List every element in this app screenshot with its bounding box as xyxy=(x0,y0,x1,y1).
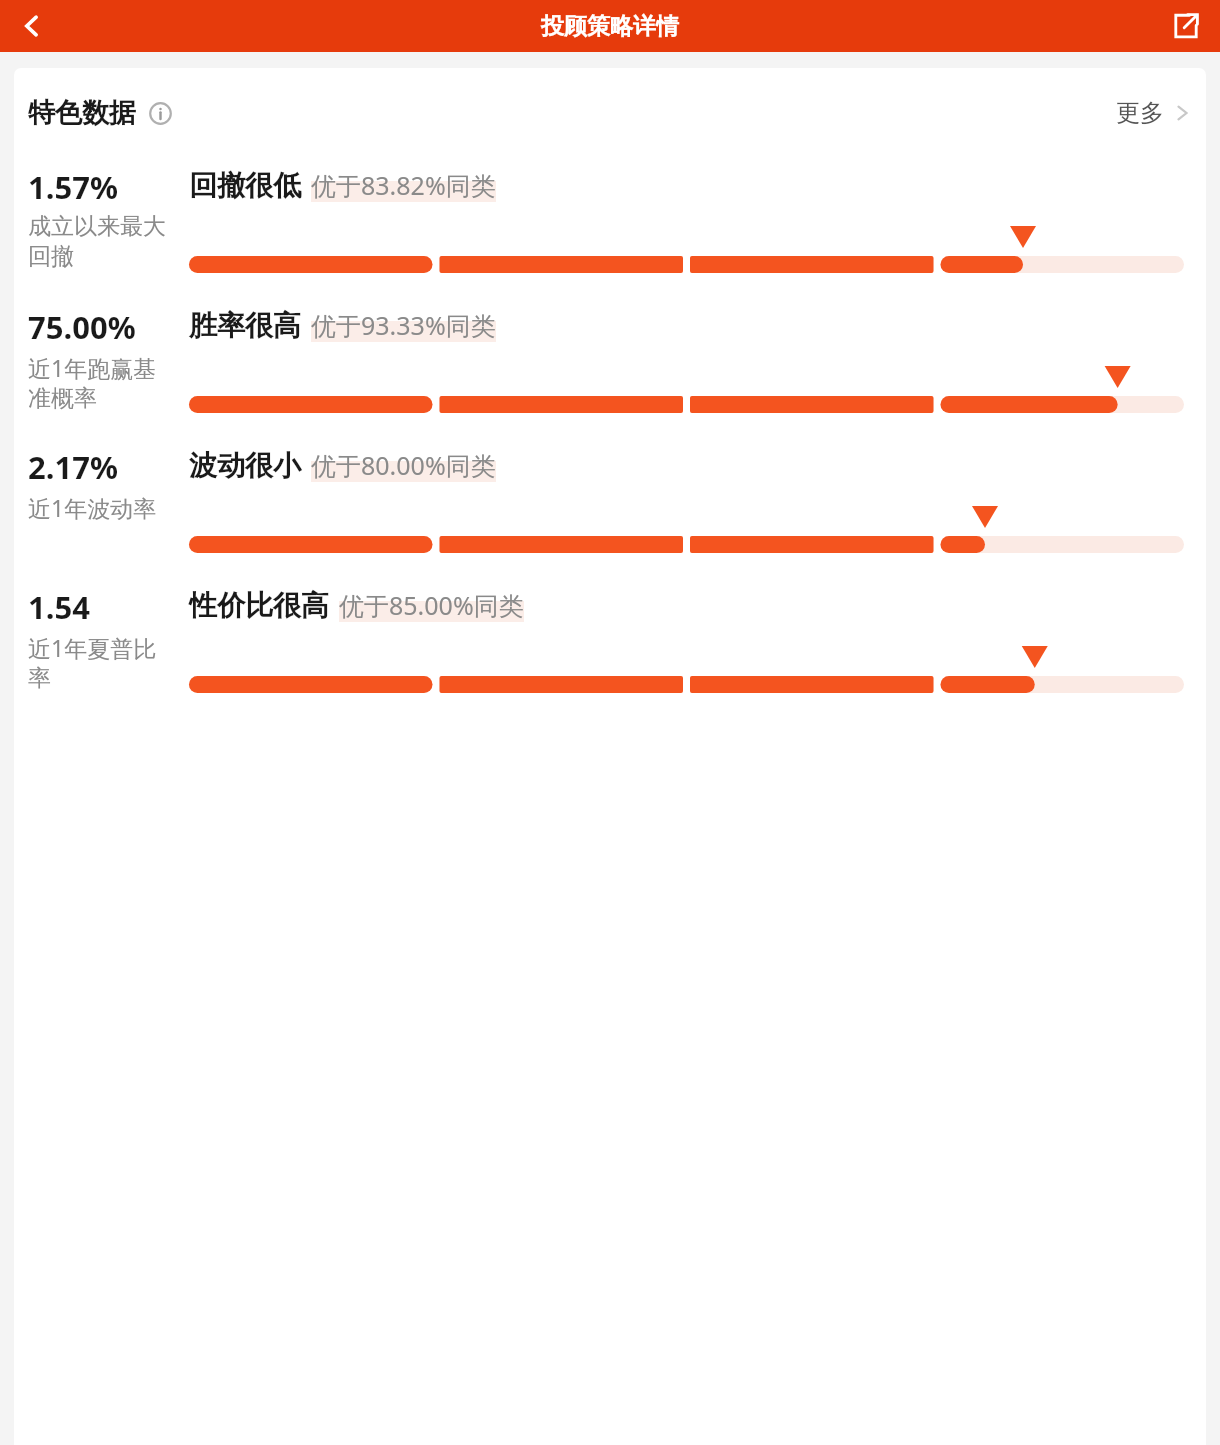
staticText: 近1年跑赢基 准概率 xyxy=(28,352,157,413)
staticText: 1.57% xyxy=(28,166,118,208)
staticText: 近1年夏普比 率 xyxy=(28,632,157,693)
staticText: 2.17% xyxy=(28,446,118,488)
button[interactable]: 2.17% xyxy=(14,438,1206,578)
button[interactable]: 更多 xyxy=(1110,92,1196,134)
staticText: 1.54 xyxy=(28,586,90,628)
button[interactable]: 1.54 xyxy=(14,578,1206,718)
staticText: 胜率很高 xyxy=(189,308,301,343)
staticText: 优于93.33%同类 xyxy=(311,308,496,342)
staticText: 回撤很低 xyxy=(189,168,301,203)
staticText: 波动很小 xyxy=(189,448,301,483)
button[interactable]: Share xyxy=(1162,2,1210,50)
staticText: 优于83.82%同类 xyxy=(311,168,496,202)
button[interactable]: Info xyxy=(145,98,175,128)
button[interactable]: 75.00% xyxy=(14,298,1206,438)
staticText: 更多 xyxy=(1116,98,1164,128)
staticText: 近1年波动率 xyxy=(28,492,157,523)
staticText: 优于80.00%同类 xyxy=(311,448,496,482)
staticText: 75.00% xyxy=(28,306,136,348)
staticText: 特色数据 xyxy=(28,96,136,130)
button[interactable]: Back xyxy=(8,2,56,50)
staticText: 成立以来最大 回撤 xyxy=(28,212,166,271)
staticText: 性价比很高 xyxy=(189,588,329,623)
staticText: 优于85.00%同类 xyxy=(339,588,524,622)
button[interactable]: 1.57% xyxy=(14,158,1206,298)
staticText: 投顾策略详情 xyxy=(541,12,679,41)
